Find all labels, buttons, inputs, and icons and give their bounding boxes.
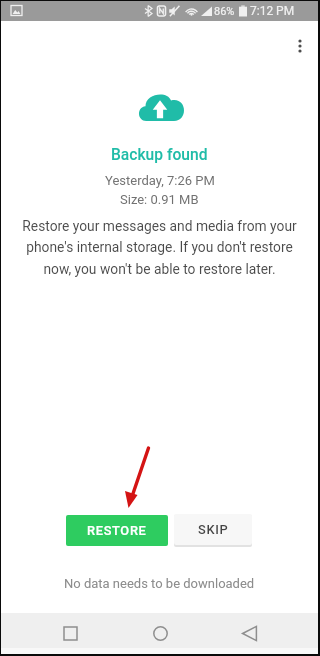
staticText: Size: 0.91 MB (120, 192, 199, 207)
staticText: Yesterday, 7:26 PM (105, 173, 215, 188)
button[interactable]: Recents (50, 613, 90, 654)
button[interactable]: SKIP (174, 514, 252, 545)
staticText: SKIP (198, 522, 229, 537)
button[interactable]: Back (229, 613, 269, 654)
button[interactable]: Home (140, 613, 180, 654)
staticText: Backup found (111, 146, 208, 164)
staticText: No data needs to be downloaded (64, 576, 255, 591)
button[interactable]: RESTORE (66, 515, 168, 546)
staticText: 86% (214, 5, 235, 18)
staticText: RESTORE (87, 523, 147, 538)
staticText: Restore your messages and media from you… (15, 218, 304, 278)
button[interactable]: More options (283, 29, 317, 63)
staticText: 7:12 PM (250, 4, 295, 18)
